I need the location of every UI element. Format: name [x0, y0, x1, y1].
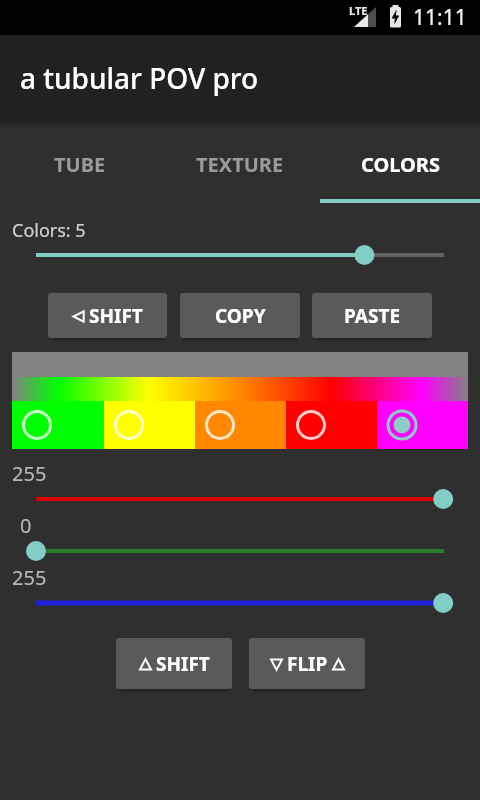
staticText: PASTE: [344, 303, 401, 329]
button[interactable]: TUBE: [0, 120, 160, 203]
button[interactable]: [0, 591, 480, 615]
button[interactable]: [12, 401, 104, 449]
button[interactable]: [286, 401, 377, 449]
staticText: 11:11: [413, 3, 467, 32]
button[interactable]: SHIFT: [116, 638, 232, 689]
button[interactable]: [0, 243, 480, 267]
staticText: 255: [12, 460, 47, 487]
staticText: SHIFT: [89, 303, 143, 329]
button[interactable]: TEXTURE: [160, 120, 320, 203]
button[interactable]: [104, 401, 195, 449]
button[interactable]: SHIFT: [48, 293, 167, 338]
staticText: COPY: [215, 303, 266, 329]
staticText: LTE: [349, 3, 368, 18]
button[interactable]: COLORS: [320, 120, 480, 203]
staticText: COLORS: [361, 151, 440, 178]
staticText: SHIFT: [156, 651, 210, 677]
button[interactable]: COPY: [180, 293, 300, 338]
button[interactable]: PASTE: [312, 293, 432, 338]
button[interactable]: FLIP: [249, 638, 365, 689]
staticText: TEXTURE: [196, 151, 284, 178]
staticText: TUBE: [54, 151, 106, 178]
staticText: FLIP: [287, 651, 328, 677]
staticText: Colors: 5: [12, 218, 86, 243]
button[interactable]: [0, 487, 480, 511]
staticText: 0: [20, 512, 32, 539]
staticText: 255: [12, 564, 47, 591]
button[interactable]: [377, 401, 468, 449]
button[interactable]: [195, 401, 286, 449]
button[interactable]: [0, 539, 480, 563]
staticText: a tubular POV pro: [20, 59, 259, 97]
